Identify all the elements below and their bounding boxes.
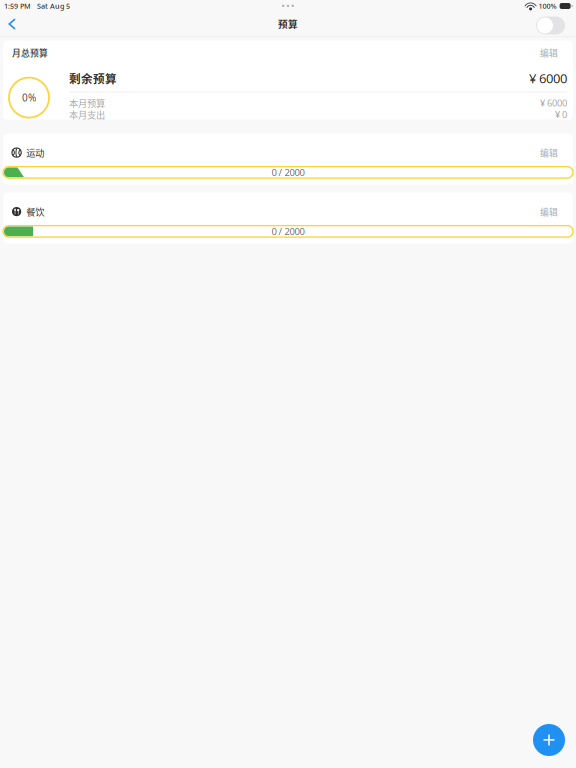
- staticText: ¥ 6000: [529, 69, 567, 87]
- staticText: Sat Aug 5: [37, 1, 70, 11]
- button[interactable]: Back: [1, 12, 23, 36]
- staticText: 编辑: [540, 146, 558, 159]
- staticText: 1:59 PM: [4, 1, 31, 11]
- staticText: 0 / 2000: [271, 166, 304, 179]
- staticText: ¥ 0: [555, 108, 567, 121]
- staticText: 本月支出: [69, 108, 105, 121]
- button[interactable]: 编辑: [540, 198, 558, 226]
- staticText: ¥ 6000: [540, 97, 567, 109]
- staticText: 运动: [26, 146, 44, 159]
- staticText: 餐饮: [26, 205, 44, 218]
- staticText: 0%: [22, 91, 36, 104]
- staticText: 编辑: [540, 205, 558, 218]
- staticText: 剩余预算: [69, 70, 117, 86]
- staticText: 0 / 2000: [271, 225, 304, 238]
- button[interactable]: Toggle budget: [536, 13, 565, 34]
- staticText: 本月预算: [69, 96, 105, 109]
- button[interactable]: 编辑: [540, 41, 558, 65]
- staticText: 编辑: [540, 46, 558, 59]
- staticText: 预算: [278, 16, 298, 30]
- button[interactable]: 编辑: [540, 139, 558, 167]
- button[interactable]: Add budget: [533, 724, 565, 756]
- staticText: 月总预算: [12, 46, 48, 59]
- staticText: 100%: [539, 1, 557, 11]
